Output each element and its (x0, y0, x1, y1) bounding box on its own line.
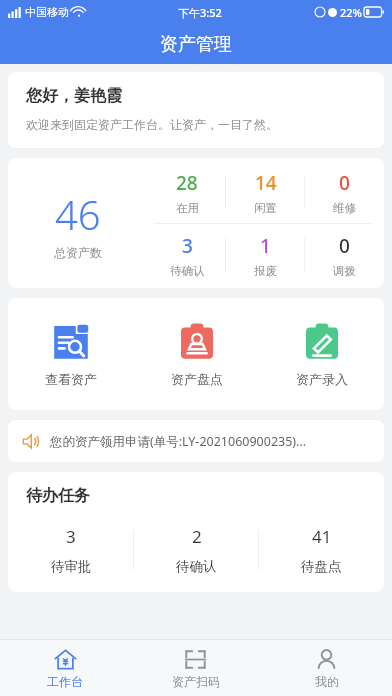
staticText: 2 (192, 525, 202, 548)
staticText: 28 (176, 170, 198, 196)
staticText: 14 (255, 170, 277, 196)
staticText: 您的资产领用申请(单号:LY-2021060900235)... (50, 433, 307, 450)
staticText: 46 (55, 187, 101, 241)
staticText: 中国移动 (25, 5, 69, 19)
staticText: 待确认 (176, 558, 217, 575)
other: 我的 (315, 648, 338, 671)
other: 工作台 (54, 648, 77, 671)
button[interactable]: 我的 (261, 640, 392, 696)
button[interactable]: 3 (148, 224, 226, 286)
button[interactable]: 查看资产 (8, 298, 134, 410)
button[interactable]: 资产录入 (259, 298, 384, 410)
staticText: 资产扫码 (172, 674, 220, 689)
staticText: 1 (260, 233, 271, 259)
staticText: 在用 (176, 201, 199, 215)
button[interactable]: 41 (259, 522, 384, 578)
staticText: 0 (339, 170, 350, 196)
staticText: 闲置 (254, 201, 277, 215)
button[interactable]: 资产扫码 (130, 640, 261, 696)
staticText: 22% (340, 5, 362, 20)
staticText: 待办任务 (26, 486, 90, 506)
staticText: 待审批 (51, 558, 92, 575)
button[interactable]: 资产盘点 (134, 298, 259, 410)
staticText: 欢迎来到固定资产工作台。让资产，一目了然。 (26, 117, 278, 132)
staticText: 报废 (254, 264, 277, 278)
staticText: 0 (339, 233, 350, 259)
button[interactable]: 28 (148, 161, 226, 223)
button[interactable]: 1 (226, 224, 305, 286)
button[interactable]: 3 (8, 522, 134, 578)
staticText: 资产盘点 (171, 371, 223, 387)
button[interactable]: 工作台 (0, 640, 130, 696)
staticText: 待盘点 (301, 558, 342, 575)
button[interactable]: 0 (305, 161, 384, 223)
staticText: 总资产数 (54, 245, 102, 260)
staticText: 资产管理 (160, 33, 232, 56)
staticText: 3 (182, 233, 193, 259)
staticText: 您好，姜艳霞 (26, 86, 122, 106)
staticText: 查看资产 (45, 371, 97, 387)
staticText: 41 (312, 525, 332, 548)
button[interactable]: 2 (134, 522, 259, 578)
button[interactable]: 0 (305, 224, 384, 286)
staticText: 资产录入 (296, 371, 348, 387)
button[interactable]: 您的资产领用申请(单号:LY-2021060900235)... (0, 420, 392, 462)
staticText: 调拨 (333, 264, 356, 278)
staticText: 待确认 (170, 264, 205, 278)
staticText: 下午3:52 (178, 5, 222, 20)
staticText: 维修 (333, 201, 356, 215)
staticText: 3 (66, 525, 76, 548)
staticText: 我的 (315, 674, 339, 689)
staticText: 工作台 (47, 674, 83, 689)
button[interactable]: 14 (226, 161, 305, 223)
other: 资产扫码 (184, 648, 207, 671)
